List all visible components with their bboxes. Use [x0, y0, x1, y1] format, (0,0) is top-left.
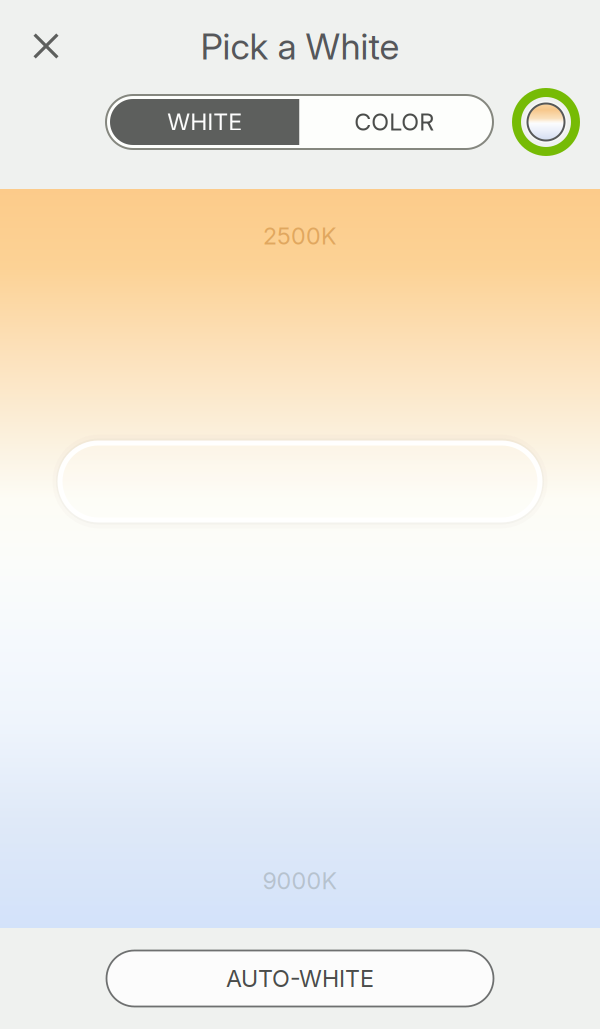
- button[interactable]: COLOR: [299, 99, 489, 145]
- button[interactable]: Current colour: [512, 88, 580, 156]
- staticText: COLOR: [354, 108, 434, 136]
- button[interactable]: WHITE: [110, 99, 299, 145]
- staticText: AUTO-WHITE: [226, 964, 374, 993]
- button[interactable]: AUTO-WHITE: [106, 950, 493, 1006]
- staticText: 9000K: [262, 867, 337, 895]
- staticText: Pick a White: [200, 25, 399, 68]
- button[interactable]: Close: [22, 18, 70, 70]
- staticText: 2500K: [263, 222, 337, 250]
- staticText: WHITE: [167, 108, 242, 136]
